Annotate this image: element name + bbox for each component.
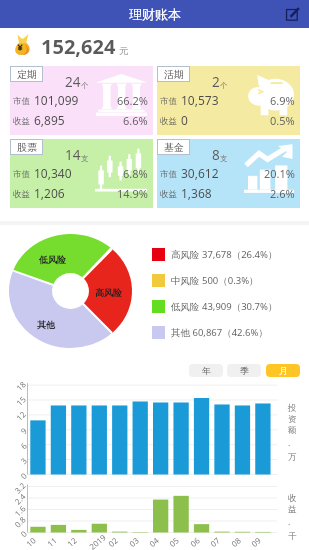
staticText: 益 (288, 504, 297, 515)
staticText: 07 (208, 534, 222, 549)
staticText: 1,368 (181, 185, 212, 201)
staticText: 千 (288, 531, 297, 542)
button[interactable]: 低风险 43,909（30.7%） (152, 300, 278, 313)
staticText: 理财账本 (129, 6, 181, 22)
staticText: 6 (18, 440, 29, 451)
staticText: 0.5% (270, 113, 295, 128)
staticText: 20.1% (264, 166, 295, 181)
staticText: 18 (14, 378, 28, 393)
staticText: 1,206 (34, 185, 65, 201)
staticText: 14.9% (117, 186, 148, 201)
staticText: 投 (288, 403, 297, 414)
button[interactable]: 其他 60,867（42.6%） (152, 326, 268, 339)
staticText: 个 (81, 81, 89, 90)
button[interactable]: Edit (283, 4, 303, 24)
staticText: 6.9% (270, 93, 295, 108)
button[interactable]: 股票 (10, 139, 153, 208)
staticText: 万 (288, 452, 297, 463)
staticText: 0.8 (12, 513, 28, 530)
staticText: 6,895 (34, 112, 65, 128)
staticText: 12 (65, 534, 79, 549)
staticText: · (288, 519, 291, 531)
button[interactable]: 年 (189, 364, 223, 377)
staticText: 101,099 (34, 92, 79, 108)
staticText: 低风险 43,909（30.7%） (171, 300, 278, 313)
staticText: 元 (119, 45, 129, 57)
staticText: 12 (14, 408, 28, 423)
staticText: 2 (212, 73, 220, 91)
button[interactable]: 月 (266, 364, 300, 377)
staticText: 股票 (17, 141, 37, 154)
staticText: 1.6 (12, 502, 28, 519)
staticText: 支 (81, 154, 89, 163)
staticText: 年 (202, 365, 211, 376)
button[interactable]: 基金 (157, 139, 300, 208)
staticText: 66.2% (117, 93, 148, 108)
staticText: 基金 (164, 141, 184, 154)
staticText: 定期 (17, 68, 37, 81)
staticText: 10,573 (181, 92, 219, 108)
staticText: 09 (249, 534, 263, 549)
staticText: 02 (106, 534, 120, 549)
staticText: 3 (18, 455, 29, 466)
staticText: 24 (65, 73, 81, 91)
staticText: 收 (288, 493, 297, 504)
button[interactable]: 活期 (157, 66, 300, 135)
button[interactable]: 季 (227, 364, 261, 377)
staticText: 08 (229, 534, 243, 549)
staticText: 市值 (160, 169, 177, 180)
button[interactable]: 高风险 37,678（26.4%） (152, 248, 278, 261)
staticText: 高风险 37,678（26.4%） (171, 248, 278, 261)
staticText: 15 (14, 393, 28, 408)
staticText: 收益 (13, 189, 30, 200)
staticText: 04 (147, 534, 161, 549)
staticText: 3.2 (12, 479, 28, 496)
staticText: 个 (220, 81, 228, 90)
staticText: 11 (45, 534, 59, 549)
staticText: 06 (188, 534, 202, 549)
staticText: 10 (24, 534, 38, 549)
staticText: 6.8% (123, 166, 148, 181)
staticText: 8 (212, 146, 220, 164)
staticText: 2.6% (270, 186, 295, 201)
button[interactable]: 中风险 500（0.3%） (152, 274, 259, 287)
staticText: 03 (127, 534, 141, 549)
staticText: 季 (240, 365, 249, 376)
staticText: 0 (181, 112, 188, 128)
staticText: 9 (18, 425, 29, 436)
staticText: · (288, 440, 291, 452)
staticText: 资 (288, 414, 297, 425)
staticText: 10,340 (34, 165, 72, 181)
staticText: 高风险 (95, 287, 122, 298)
staticText: 活期 (164, 68, 184, 81)
staticText: 收益 (160, 116, 177, 127)
staticText: 05 (167, 534, 181, 549)
staticText: 市值 (13, 96, 30, 107)
staticText: 额 (288, 425, 297, 436)
staticText: 低风险 (39, 254, 66, 265)
staticText: 市值 (13, 169, 30, 180)
button[interactable]: 定期 (10, 66, 153, 135)
staticText: 市值 (160, 96, 177, 107)
staticText: 月 (279, 365, 288, 376)
staticText: 其他 (37, 319, 55, 330)
staticText: 0 (18, 528, 29, 539)
staticText: 中风险 500（0.3%） (171, 274, 259, 287)
staticText: 152,624 (41, 33, 116, 60)
staticText: 收益 (160, 189, 177, 200)
staticText: 2.4 (12, 490, 28, 507)
staticText: 0 (18, 470, 29, 481)
staticText: 其他 60,867（42.6%） (171, 326, 268, 339)
staticText: 14 (65, 146, 81, 164)
staticText: 30,612 (181, 165, 219, 181)
staticText: 2019 (87, 531, 108, 550)
staticText: 支 (220, 154, 228, 163)
staticText: 收益 (13, 116, 30, 127)
staticText: 6.6% (123, 113, 148, 128)
